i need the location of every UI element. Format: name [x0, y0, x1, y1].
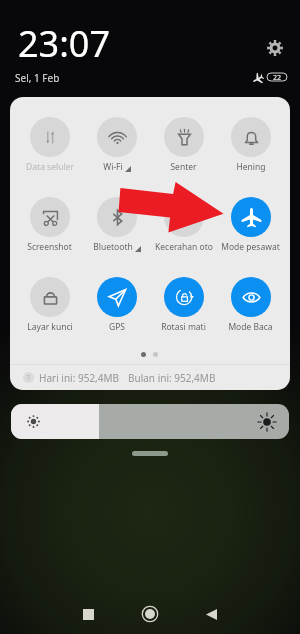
staticText: GPS	[109, 321, 125, 333]
button[interactable]: Settings	[265, 38, 285, 58]
staticText: Layar kunci	[27, 321, 73, 333]
button[interactable]: Home	[128, 592, 172, 634]
button[interactable]: Rotasi mati	[150, 277, 217, 333]
staticText: Sel, 1 Feb	[15, 71, 60, 85]
staticText: Rotasi mati	[161, 321, 206, 333]
button[interactable]: Bluetooth	[83, 197, 150, 253]
staticText: Hari ini: 952,4MB	[39, 371, 120, 385]
button[interactable]: Wi-Fi	[83, 117, 150, 173]
button[interactable]: Recents	[66, 592, 110, 634]
button[interactable]: ?	[10, 365, 290, 390]
staticText: Hening	[236, 161, 266, 173]
button[interactable]: Kecerahan oto	[150, 197, 217, 253]
button[interactable]: Layar kunci	[16, 277, 83, 333]
staticText: ?	[27, 373, 31, 383]
button[interactable]: Senter	[150, 117, 217, 173]
staticText: Mode Baca	[228, 321, 273, 333]
staticText: Mode pesawat	[221, 241, 280, 253]
staticText: Wi-Fi	[103, 161, 123, 173]
button[interactable]: Hening	[217, 117, 284, 173]
button[interactable]: GPS	[83, 277, 150, 333]
button[interactable]: Data seluler	[16, 117, 83, 173]
staticText: Senter	[170, 161, 197, 173]
staticText: Data seluler	[26, 161, 74, 173]
staticText: 22	[273, 73, 282, 81]
button[interactable]: Screenshot	[16, 197, 83, 253]
button[interactable]: Brightness	[11, 404, 289, 439]
staticText: 23:07	[18, 19, 111, 68]
button[interactable]: Mode pesawat	[217, 197, 284, 253]
button[interactable]: Back	[189, 592, 233, 634]
button[interactable]: Mode Baca	[217, 277, 284, 333]
staticText: Bluetooth	[93, 241, 133, 253]
staticText: Kecerahan oto	[155, 241, 213, 253]
staticText: Bulan ini: 952,4MB	[128, 371, 216, 385]
staticText: Screenshot	[27, 241, 72, 253]
